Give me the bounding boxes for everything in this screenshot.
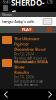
staticText: LTE [47,0,53,5]
button[interactable]: Back [0,89,12,100]
button[interactable]: Worldwide MMA Show Results [0,56,56,79]
staticText: The Ultimate Fighter December Bout [14,36,46,52]
button[interactable]: SHERDOG [11,4,45,12]
staticText: Worldwide MMA Show Results [14,59,48,75]
staticText: Sherdog staff report on the latest card [14,57,47,64]
staticText: News [2,12,12,17]
staticText: Dec 12, 2024 [14,52,34,56]
staticText: Full results and recap inside the arena [14,80,43,87]
staticText: Dec 10, 2024 [14,75,34,79]
staticText: SHERDOG [11,0,45,19]
button[interactable]: Menu [0,4,11,12]
staticText: 9:41 [3,0,10,5]
button[interactable]: The Ultimate Fighter December Bout [0,33,56,56]
staticText: hangsr/baby's wife [2,19,34,24]
staticText: PLAY [22,27,32,32]
button[interactable]: hangsr/baby's wife [0,17,56,33]
button[interactable]: Forward [44,89,56,100]
